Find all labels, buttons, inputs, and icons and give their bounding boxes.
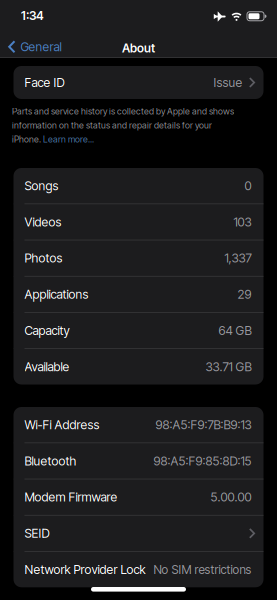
staticText: Network Provider Lock xyxy=(24,562,145,577)
staticText: 1,337 xyxy=(224,251,251,266)
staticText: 33.71 GB xyxy=(205,359,251,374)
staticText: Learn more... xyxy=(43,134,94,145)
staticText: No SIM restrictions xyxy=(153,562,251,577)
staticText: 98:A5:F9:7B:B9:13 xyxy=(155,417,251,432)
staticText: 29 xyxy=(237,287,251,302)
staticText: SEID xyxy=(24,526,49,541)
staticText: Parts and service history is collected b… xyxy=(12,106,234,117)
staticText: Capacity xyxy=(24,323,69,338)
button[interactable]: SEID xyxy=(13,516,263,551)
staticText: 98:A5:F9:85:8D:15 xyxy=(153,453,251,468)
staticText: Face ID xyxy=(24,75,64,90)
staticText: 64 GB xyxy=(218,323,251,338)
staticText: 1:34 xyxy=(21,8,44,23)
staticText: Videos xyxy=(24,214,61,229)
staticText: information on the status and repair det… xyxy=(12,120,212,131)
staticText: Issue xyxy=(213,75,242,90)
staticText: About xyxy=(122,41,155,55)
staticText: iPhone. xyxy=(12,134,43,145)
staticText: General xyxy=(20,39,61,54)
staticText: Applications xyxy=(24,287,88,302)
button[interactable]: Learn more... xyxy=(43,134,94,145)
staticText: 5.00.00 xyxy=(210,490,251,505)
staticText: Wi-Fi Address xyxy=(24,417,99,432)
staticText: 0 xyxy=(244,178,251,193)
button[interactable]: General xyxy=(0,33,61,54)
button[interactable]: Face ID xyxy=(13,66,263,99)
staticText: Songs xyxy=(24,178,58,193)
staticText: Photos xyxy=(24,251,62,266)
staticText: Available xyxy=(24,359,69,374)
staticText: 103 xyxy=(233,214,251,229)
staticText: Bluetooth xyxy=(24,453,76,468)
staticText: Modem Firmware xyxy=(24,490,117,505)
